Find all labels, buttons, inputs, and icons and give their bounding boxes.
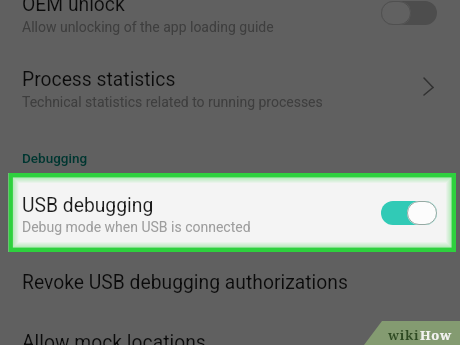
- staticText: How: [420, 326, 452, 344]
- staticText: Allow unlocking of the app loading guide: [22, 19, 274, 35]
- staticText: Allow mock locations: [22, 331, 206, 345]
- staticText: Process statistics: [22, 68, 176, 91]
- staticText: Debugging: [22, 150, 88, 166]
- staticText: OEM unlock: [22, 0, 125, 16]
- staticText: Debug mode when USB is connected: [22, 219, 251, 235]
- button[interactable]: USB debugging on: [381, 201, 437, 225]
- staticText: Revoke USB debugging authorizations: [22, 271, 348, 294]
- button[interactable]: USB debugging: [0, 193, 460, 217]
- staticText: wiki: [388, 326, 420, 344]
- staticText: Technical statistics related to running …: [22, 94, 323, 110]
- button[interactable]: Process statistics: [0, 67, 460, 91]
- button[interactable]: OEM unlock: [0, 0, 460, 16]
- button[interactable]: OEM unlock off: [381, 1, 437, 25]
- button[interactable]: Revoke USB debugging authorizations: [0, 270, 460, 294]
- staticText: USB debugging: [22, 194, 154, 217]
- button[interactable]: Open process statistics: [418, 77, 440, 99]
- button[interactable]: Allow mock locations: [0, 330, 460, 345]
